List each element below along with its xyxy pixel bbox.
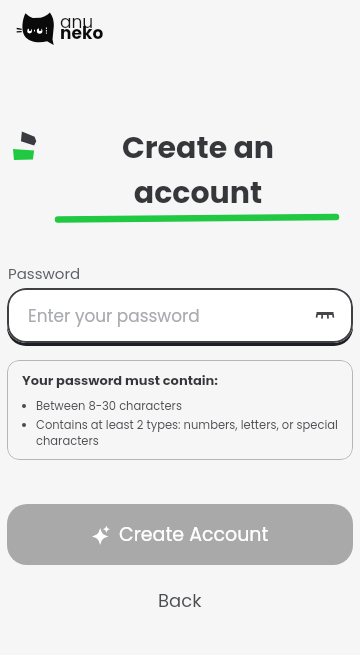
staticText: anu xyxy=(60,10,94,34)
staticText: Your password must contain: xyxy=(22,371,219,389)
button[interactable]: Enter your password xyxy=(7,288,353,343)
button[interactable]: Back xyxy=(136,580,224,621)
staticText: Create an account xyxy=(72,127,324,214)
staticText: Password xyxy=(8,263,81,284)
button[interactable]: Show password xyxy=(313,303,337,327)
staticText: Contains at least 2 types: numbers, lett… xyxy=(36,417,341,449)
button[interactable]: Create Account xyxy=(7,504,353,565)
staticText: Between 8-30 characters xyxy=(36,398,182,414)
staticText: Create Account xyxy=(119,521,269,548)
staticText: Back xyxy=(158,588,202,613)
staticText: Enter your password xyxy=(28,304,200,328)
staticText: neko xyxy=(60,21,104,45)
